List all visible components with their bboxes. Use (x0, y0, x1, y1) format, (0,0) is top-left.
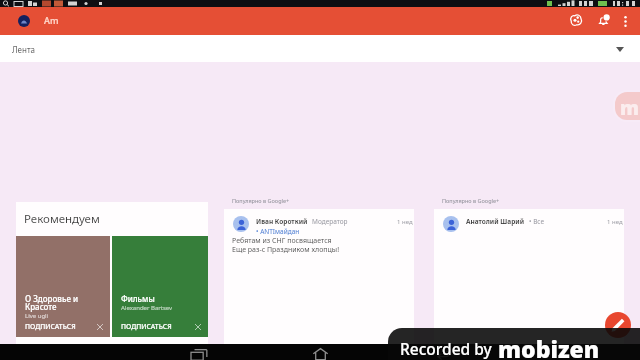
staticText: Анатолий Шарий (466, 217, 525, 226)
staticText: Recorded by (400, 338, 492, 359)
staticText: m (620, 95, 640, 121)
staticText: 1 нед (607, 218, 623, 226)
button[interactable]: Анатолий Шарий (434, 209, 624, 344)
staticText: Фильмы (121, 293, 155, 304)
button[interactable]: Recent apps (186, 344, 212, 360)
staticText: Модератор (312, 217, 348, 226)
button[interactable]: Home (307, 344, 333, 360)
button[interactable]: Communities (565, 9, 587, 31)
staticText: Популярно в Google+ (232, 197, 290, 204)
button[interactable]: Фильмы (112, 236, 208, 337)
button[interactable]: More options (615, 11, 635, 31)
button[interactable]: Иван Короткий (224, 209, 414, 344)
staticText: mobizen (498, 333, 600, 360)
staticText: Лента (12, 44, 36, 55)
button[interactable]: Notifications (592, 9, 614, 31)
staticText: ПОДПИСАТЬСЯ (121, 322, 172, 331)
button[interactable]: О Здоровье и Красоте (16, 236, 110, 337)
staticText: Alexander Bartsev (121, 304, 173, 312)
button[interactable]: Лента (0, 35, 640, 62)
staticText: Ребятам из СНГ посвящается Еще раз-с Пра… (232, 236, 340, 254)
staticText: Рекомендуем (24, 211, 100, 227)
staticText: ПОДПИСАТЬСЯ (25, 322, 76, 331)
button[interactable]: Back (430, 344, 456, 360)
staticText: Live ugli (25, 312, 49, 320)
button[interactable]: Profile (18, 15, 30, 27)
staticText: • Все (529, 217, 545, 226)
staticText: О Здоровье и Красоте (25, 293, 79, 312)
staticText: 1 нед (397, 218, 413, 226)
staticText: Am (44, 14, 59, 26)
button[interactable]: Compose new post (605, 312, 631, 338)
staticText: Иван Короткий (256, 217, 308, 226)
staticText: • ANTIмайдан (256, 227, 300, 236)
staticText: Популярно в Google+ (442, 197, 500, 204)
